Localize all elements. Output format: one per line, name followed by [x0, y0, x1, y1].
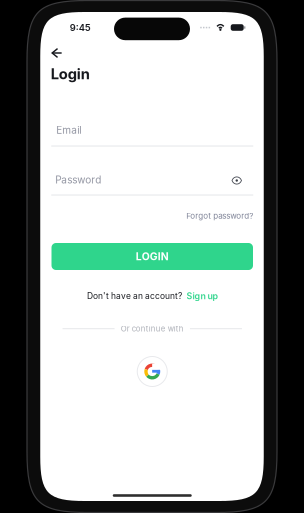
button[interactable]: Sign up [187, 291, 218, 301]
button[interactable]: Continue with Google [137, 356, 167, 386]
staticText: Or continue with [121, 324, 184, 333]
staticText: Forgot password? [186, 211, 253, 221]
button[interactable]: Back [48, 45, 65, 61]
staticText: 9:45 [70, 22, 91, 33]
staticText: Login [51, 65, 90, 83]
button[interactable]: LOGIN [51, 243, 253, 270]
staticText: LOGIN [136, 250, 169, 263]
button[interactable]: Forgot password? [184, 209, 255, 223]
staticText: Email [56, 124, 81, 136]
button[interactable]: Show password [229, 174, 245, 187]
staticText: Password [55, 174, 101, 186]
staticText: Sign up [187, 291, 218, 301]
staticText: Don't have an account? [87, 291, 182, 301]
